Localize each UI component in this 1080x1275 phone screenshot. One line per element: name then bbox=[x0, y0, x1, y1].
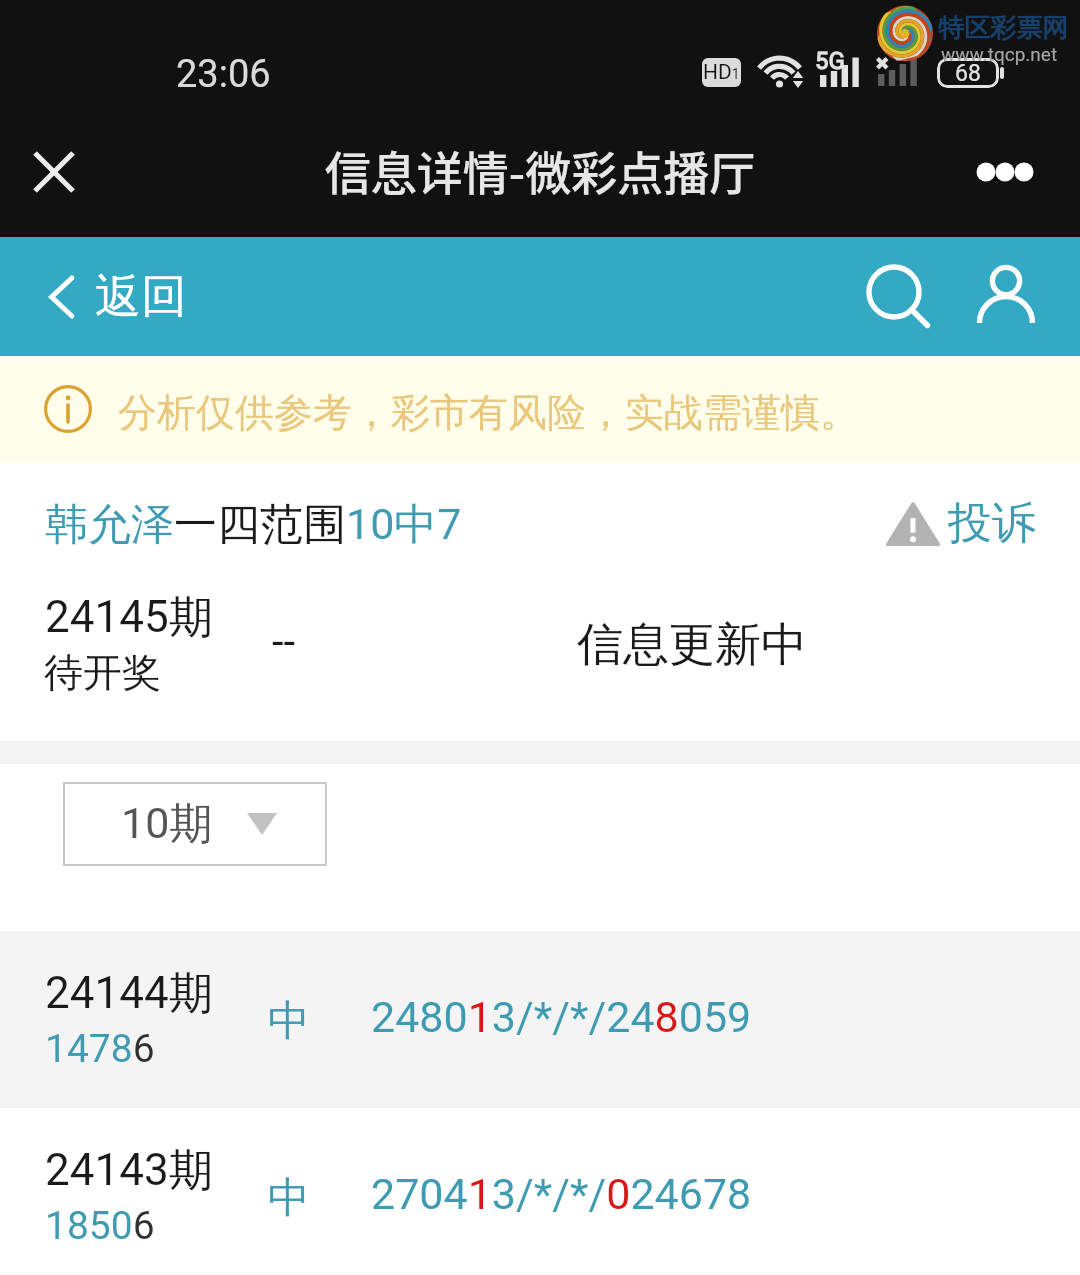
button[interactable]: Account bbox=[956, 244, 1056, 344]
staticText: 14786 bbox=[45, 1026, 155, 1072]
button[interactable]: 投诉 bbox=[884, 488, 1036, 558]
button[interactable]: 24144期 bbox=[0, 931, 1080, 1108]
staticText: 投诉 bbox=[948, 496, 1036, 551]
staticText: www.tqcp.net bbox=[941, 43, 1058, 65]
button[interactable]: Close bbox=[16, 134, 92, 210]
staticText: 23:06 bbox=[176, 52, 271, 97]
button[interactable]: 24143期 bbox=[0, 1108, 1080, 1275]
staticText: 5G bbox=[815, 47, 845, 75]
staticText: 韩允泽一四范围10中7 bbox=[45, 498, 462, 552]
staticText: 特区彩票网 bbox=[938, 12, 1068, 45]
button[interactable]: 韩允泽一四范围10中7 bbox=[45, 487, 462, 549]
staticText: 10期 bbox=[121, 797, 213, 851]
button[interactable]: 返回 bbox=[30, 237, 211, 356]
staticText: 待开奖 bbox=[44, 648, 161, 697]
staticText: 中 bbox=[268, 995, 310, 1048]
staticText: 24145期 bbox=[45, 590, 213, 645]
staticText: 248013/*/*/248059 bbox=[371, 992, 752, 1042]
button[interactable]: 10期 bbox=[63, 782, 327, 866]
staticText: 分析仅供参考，彩市有风险，实战需谨慎。 bbox=[118, 388, 859, 437]
staticText: 信息详情-微彩点播厅 bbox=[0, 137, 1080, 204]
staticText: 24143期 bbox=[45, 1143, 213, 1198]
staticText: 中 bbox=[268, 1172, 310, 1225]
button[interactable]: Search bbox=[846, 244, 946, 344]
staticText: 18506 bbox=[45, 1203, 155, 1249]
staticText: 68 bbox=[955, 60, 981, 87]
button[interactable]: More options bbox=[962, 140, 1042, 204]
staticText: 返回 bbox=[95, 268, 187, 326]
staticText: 24144期 bbox=[45, 966, 213, 1021]
staticText: HD1 bbox=[703, 60, 740, 85]
staticText: 270413/*/*/024678 bbox=[371, 1169, 752, 1219]
staticText: -- bbox=[272, 617, 296, 666]
staticText: 信息更新中 bbox=[577, 616, 807, 674]
